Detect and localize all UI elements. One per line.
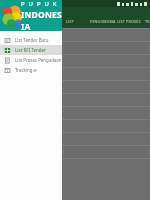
button[interactable]: List Tender Baru (0, 35, 62, 45)
button[interactable] (0, 54, 150, 67)
button[interactable]: Jasa (0, 132, 150, 145)
other: List RFI Tender (4, 47, 11, 54)
button[interactable] (0, 93, 150, 106)
other: List Tender Baru (4, 37, 11, 44)
button[interactable] (0, 80, 150, 93)
button[interactable]: List RFI Tender (0, 45, 62, 55)
button[interactable] (0, 158, 150, 171)
staticText: Dokumen management system (2, 149, 64, 155)
staticText: List RFI Tender (15, 47, 46, 53)
button[interactable]: Tracking e-Procurement (0, 65, 62, 75)
button[interactable]: PENGUMUMAN PEMENANG (90, 11, 117, 32)
button[interactable]: Dokumen management system (0, 145, 150, 158)
button[interactable]: TR (144, 11, 150, 32)
staticText: Tracking e-Procurement (15, 67, 62, 73)
button[interactable] (0, 28, 150, 41)
button[interactable]: Pengadaan (0, 119, 150, 132)
button[interactable] (0, 41, 150, 54)
button[interactable]: List Proses Pengadaan (0, 55, 62, 65)
staticText: LIST PROSES PENGADAAN (117, 19, 144, 24)
other: Tracking e-Procurement (4, 67, 11, 74)
staticText: P U P U K (21, 0, 58, 8)
staticText: INDONESIA (21, 9, 62, 31)
staticText: List Proses Pengadaan (15, 57, 62, 63)
button[interactable]: LIST PROSES PENGADAAN (117, 11, 144, 32)
staticText: TR (145, 19, 150, 24)
staticText: LIST TENDER BARU (66, 19, 90, 24)
other: List Proses Pengadaan (4, 57, 11, 64)
button[interactable]: LIST TENDER BARU (66, 11, 90, 32)
staticText: PENGUMUMAN PEMENANG (90, 19, 117, 24)
button[interactable] (0, 106, 150, 119)
staticText: List Tender Baru (15, 37, 49, 43)
button[interactable] (0, 67, 150, 80)
